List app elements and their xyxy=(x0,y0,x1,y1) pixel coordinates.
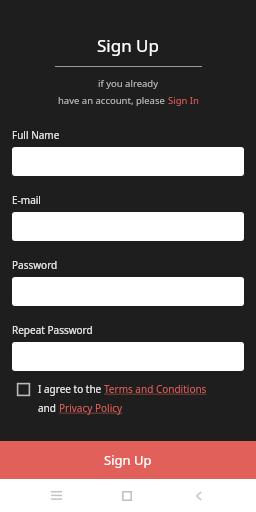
staticText: Terms and Conditions xyxy=(104,382,207,396)
button[interactable]: Full Name input field xyxy=(12,147,244,176)
button[interactable]: E-mail input field xyxy=(12,212,244,241)
button[interactable]: Menu xyxy=(41,481,71,511)
button[interactable]: Terms and Conditions xyxy=(104,382,207,396)
button[interactable]: Sign Up xyxy=(0,441,256,479)
staticText: have an account, please xyxy=(58,94,168,107)
staticText: Privacy Policy xyxy=(59,401,123,415)
staticText: E-mail xyxy=(12,193,41,207)
staticText: Sign Up xyxy=(104,451,152,469)
staticText: Sign Up xyxy=(97,34,159,57)
button[interactable]: I agree to the terms checkbox xyxy=(17,383,30,396)
button[interactable]: Home xyxy=(112,481,142,511)
staticText: Sign In xyxy=(168,94,199,107)
button[interactable]: Back xyxy=(184,481,214,511)
button[interactable]: Privacy Policy xyxy=(59,401,123,415)
button[interactable]: Sign In xyxy=(168,94,199,107)
staticText: Password xyxy=(12,258,58,272)
button[interactable]: Password input field xyxy=(12,277,244,306)
staticText: Full Name xyxy=(12,128,60,142)
staticText: Repeat Password xyxy=(12,323,93,337)
staticText: I agree to the xyxy=(38,382,104,396)
button[interactable]: Repeat Password input field xyxy=(12,342,244,371)
staticText: if you already xyxy=(98,77,159,90)
staticText: and xyxy=(38,401,59,415)
